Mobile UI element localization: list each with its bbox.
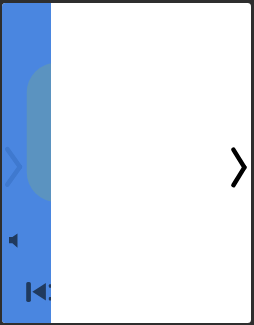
button[interactable]: Previous track bbox=[23, 275, 51, 313]
button[interactable]: Volume bbox=[4, 228, 28, 260]
button[interactable]: Collapse navigation drawer bbox=[3, 144, 29, 190]
button[interactable]: Next bbox=[225, 141, 251, 199]
button[interactable]: Selected item bbox=[23, 62, 51, 207]
